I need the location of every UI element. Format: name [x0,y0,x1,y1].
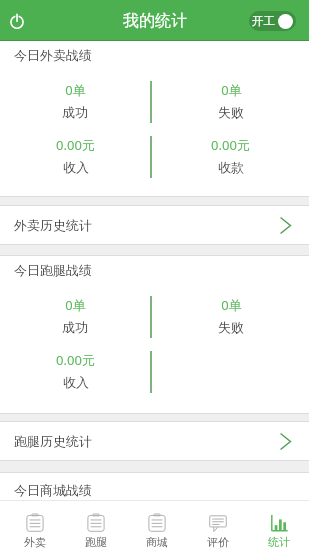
button[interactable]: Power [4,8,30,34]
staticText: 我的统计 [123,11,187,31]
staticText: 商城 [146,535,168,549]
button[interactable]: 外卖 [4,501,65,550]
staticText: 今日商城战绩 [14,482,92,498]
staticText: 0单 [221,81,242,99]
staticText: 失败 [218,104,244,120]
button[interactable]: 开工 [249,11,296,31]
staticText: 失败 [218,319,244,335]
staticText: 收款 [218,159,244,175]
staticText: 今日外卖战绩 [14,47,92,63]
staticText: 跑腿 [85,535,107,549]
staticText: 0.00元 [56,136,95,154]
staticText: 0单 [65,81,86,99]
staticText: 成功 [62,319,88,335]
staticText: 0.00元 [56,351,95,369]
button[interactable]: 跑腿历史统计 [0,422,309,460]
staticText: 开工 [252,14,275,28]
staticText: 成功 [62,104,88,120]
staticText: 跑腿历史统计 [14,433,92,449]
staticText: 收入 [63,159,89,175]
staticText: 0单 [65,296,86,314]
staticText: 收入 [63,374,89,390]
staticText: 外卖历史统计 [14,217,92,233]
staticText: 0.00元 [211,136,250,154]
button[interactable]: 评价 [187,501,248,550]
staticText: 0单 [221,296,242,314]
button[interactable]: 统计 [248,501,309,550]
staticText: 统计 [268,535,290,549]
staticText: 外卖 [24,535,46,549]
button[interactable]: 外卖历史统计 [0,206,309,244]
staticText: 今日跑腿战绩 [14,262,92,278]
button[interactable]: 跑腿 [65,501,126,550]
staticText: 评价 [207,535,229,549]
button[interactable]: 商城 [126,501,187,550]
